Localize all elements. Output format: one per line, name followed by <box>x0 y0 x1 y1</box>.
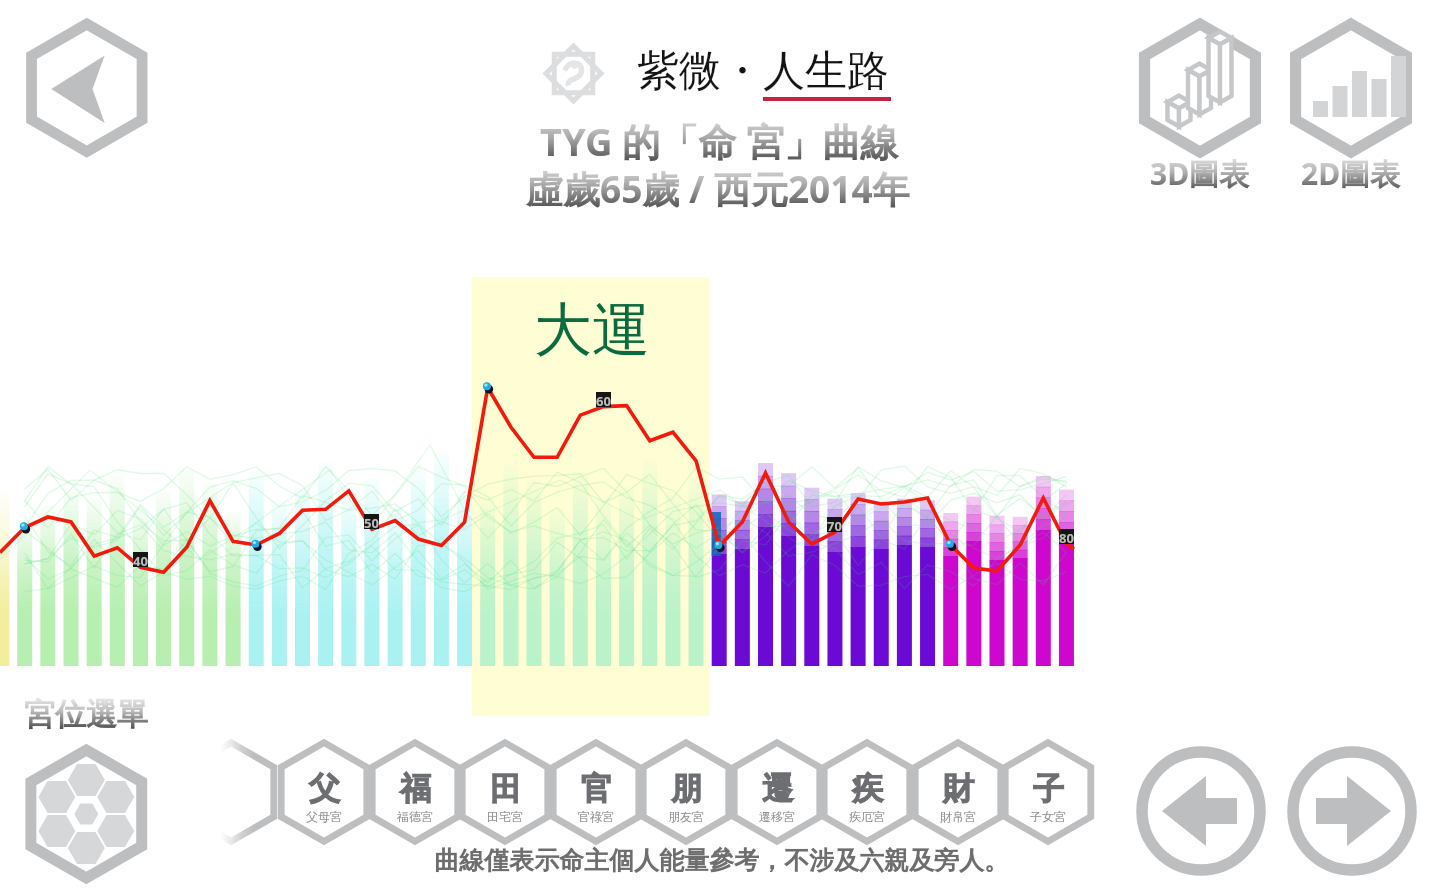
staticText: 財帛宮 <box>940 809 976 824</box>
staticText: 子 <box>1033 769 1064 808</box>
button[interactable]: 財 <box>906 736 1010 848</box>
staticText: 田宅宮 <box>487 809 523 824</box>
staticText: 子女宮 <box>1030 809 1066 824</box>
button[interactable]: 2D圖表 <box>1271 8 1431 190</box>
staticText: 田 <box>490 769 521 808</box>
staticText: 虛歲65歲 / 西元2014年 <box>526 163 910 214</box>
button[interactable]: 田 <box>453 736 557 848</box>
staticText: 遷 <box>762 769 793 808</box>
button[interactable]: 3D圖表 <box>1120 8 1280 190</box>
staticText: 50 <box>364 514 379 529</box>
staticText: 宮位選單 <box>24 695 148 734</box>
button[interactable]: 福 <box>363 736 467 848</box>
button[interactable]: 子 <box>996 736 1100 848</box>
staticText: 疾 <box>852 769 883 808</box>
staticText: 曲線僅表示命主個人能量參考，不涉及六親及旁人。 <box>434 845 1009 876</box>
staticText: 官 <box>581 769 612 808</box>
button[interactable]: 遷 <box>725 736 829 848</box>
staticText: 80 <box>1059 529 1074 544</box>
button[interactable]: 官 <box>544 736 648 848</box>
staticText: 朋 <box>671 769 702 808</box>
staticText: TYG 的「命 宮」曲線 <box>540 115 899 167</box>
staticText: 大運 <box>534 294 650 367</box>
button[interactable]: Next <box>1282 741 1422 881</box>
staticText: 紫微・人生路 <box>637 45 889 98</box>
button[interactable]: Back <box>10 11 164 165</box>
staticText: 福德宮 <box>397 809 433 824</box>
button[interactable]: Previous <box>1131 741 1271 881</box>
button[interactable]: 朋 <box>634 736 738 848</box>
staticText: 父母宮 <box>306 809 342 824</box>
staticText: 疾厄宮 <box>849 809 885 824</box>
button[interactable]: 宮位選單 <box>0 728 176 892</box>
staticText: 父 <box>309 769 340 808</box>
staticText: 官祿宮 <box>578 809 614 824</box>
button[interactable]: 疾 <box>815 736 919 848</box>
staticText: 朋友宮 <box>668 809 704 824</box>
staticText: 60 <box>596 392 611 407</box>
staticText: 70 <box>827 517 842 532</box>
button[interactable]: 父 <box>272 736 376 848</box>
staticText: 3D圖表 <box>1150 153 1250 194</box>
staticText: 40 <box>133 552 148 567</box>
staticText: 財 <box>943 769 974 808</box>
staticText: 福 <box>400 769 431 808</box>
staticText: 遷移宮 <box>759 809 795 824</box>
staticText: 2D圖表 <box>1301 153 1401 194</box>
